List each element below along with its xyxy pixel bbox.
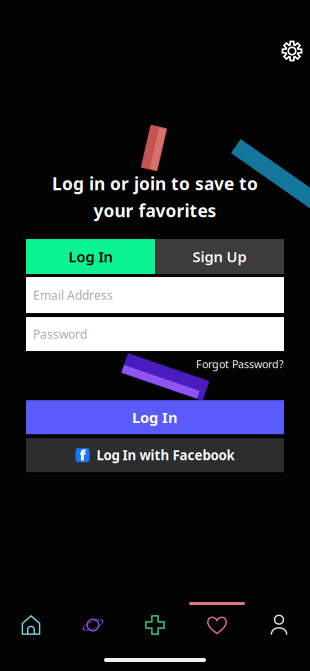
button[interactable]: Log In	[26, 400, 284, 434]
staticText: Password	[33, 326, 87, 342]
button[interactable]: Sign Up	[155, 239, 284, 274]
staticText: Log In	[132, 407, 178, 427]
button[interactable]: Explore	[62, 602, 124, 642]
button[interactable]: Log In	[26, 239, 155, 274]
button[interactable]: Create	[124, 602, 186, 642]
staticText: f	[79, 445, 85, 464]
staticText: Sign Up	[192, 247, 246, 266]
button[interactable]: Profile	[248, 602, 310, 642]
staticText: Log in or join to save to	[52, 172, 258, 195]
button[interactable]: Home	[0, 602, 62, 642]
staticText: Log In with Facebook	[96, 446, 234, 464]
button[interactable]: Forgot Password?	[196, 357, 284, 371]
button[interactable]: Settings	[276, 35, 308, 67]
button[interactable]: f	[26, 438, 284, 472]
staticText: Forgot Password?	[196, 357, 284, 371]
staticText: Email Address	[33, 287, 113, 303]
staticText: Log In	[68, 247, 112, 266]
staticText: your favorites	[93, 199, 216, 222]
button[interactable]: Favorites	[186, 602, 248, 642]
